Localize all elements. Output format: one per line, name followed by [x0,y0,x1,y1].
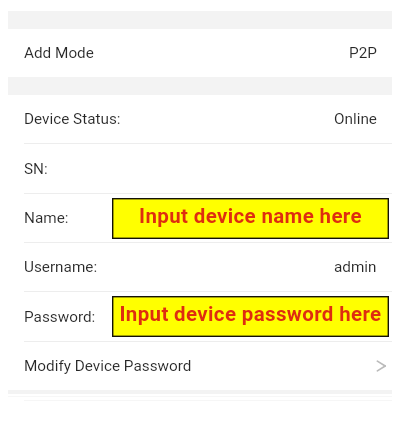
staticText: P2P [349,44,377,62]
button[interactable]: Name: [0,194,400,242]
staticText: Username: [24,258,98,276]
button[interactable]: Password: [0,292,400,341]
staticText: Password: [24,308,96,326]
staticText: admin [334,258,377,276]
staticText: Online [334,110,377,128]
button[interactable]: SN: [0,144,400,193]
button[interactable]: Device Status: [0,95,400,143]
staticText: SN: [24,160,48,178]
staticText: Add Mode [24,44,94,62]
button[interactable]: Modify Device Password [0,342,400,390]
staticText: Device Status: [24,110,121,128]
button[interactable]: Add Mode [0,29,400,77]
staticText: Input device password here [119,302,382,326]
other: Modify Device Password [374,359,388,373]
button[interactable]: Username: [0,243,400,291]
staticText: Name: [24,209,69,227]
staticText: Modify Device Password [24,357,192,375]
staticText: Input device name here [139,204,362,228]
